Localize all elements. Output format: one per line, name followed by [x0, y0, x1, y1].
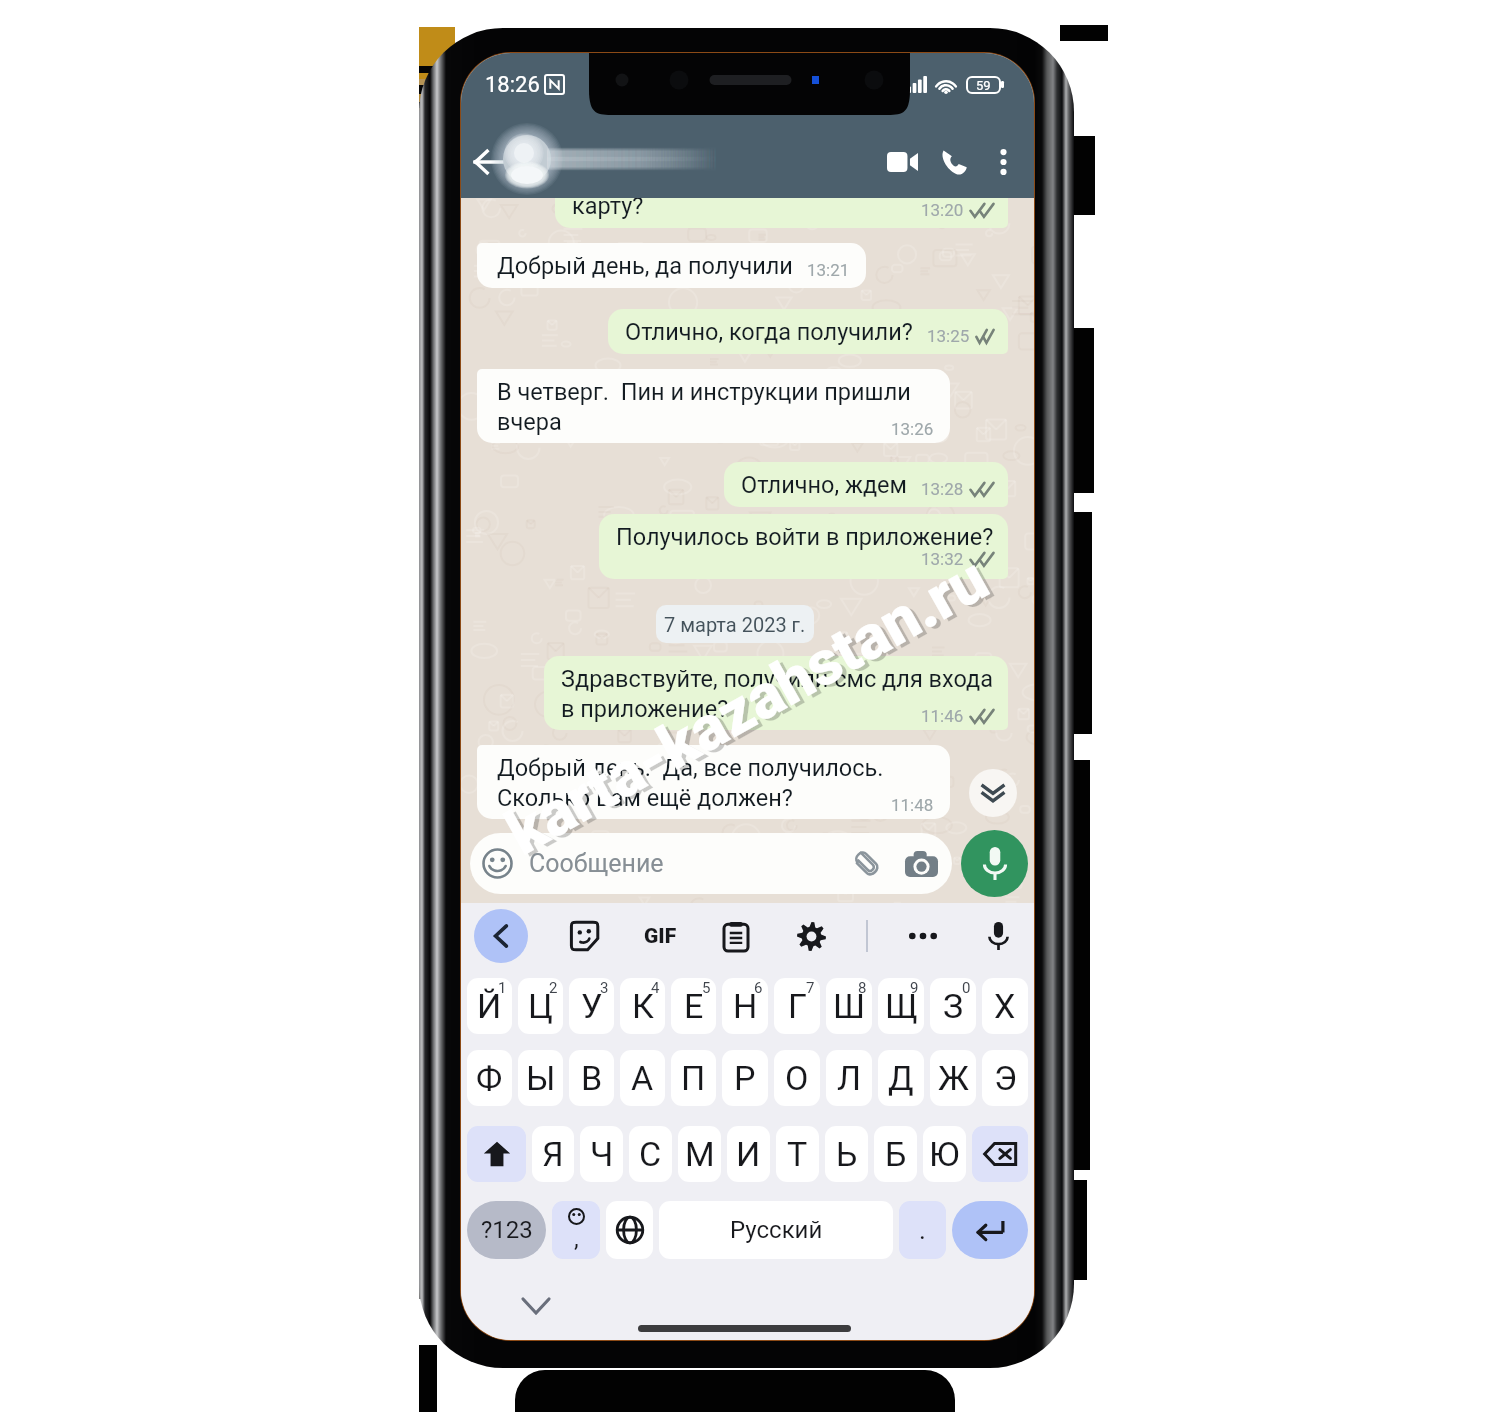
staticText: Д	[888, 1058, 914, 1098]
staticText: Ю	[929, 1134, 960, 1174]
button[interactable]: У	[569, 978, 614, 1034]
staticText: 4	[651, 979, 660, 997]
button[interactable]: П	[671, 1050, 716, 1106]
button[interactable]: Voice input	[978, 916, 1018, 956]
staticText: В четверг. Пин и инструкции пришли вчера	[497, 378, 911, 435]
button[interactable]: И	[727, 1126, 770, 1182]
button[interactable]: О	[774, 1050, 820, 1106]
button[interactable]: Contact profile	[491, 128, 751, 196]
staticText: Ц	[528, 986, 553, 1026]
staticText: 13:28	[921, 479, 964, 499]
button[interactable]: Backspace	[972, 1126, 1028, 1182]
staticText: karta-kazahstan.ru	[499, 544, 1004, 871]
staticText: Э	[994, 1058, 1017, 1098]
button[interactable]: Ы	[518, 1050, 563, 1106]
button[interactable]: Settings	[791, 916, 831, 956]
staticText: Ж	[938, 1058, 969, 1098]
button[interactable]: Отлично, ждем	[724, 462, 1008, 507]
button[interactable]: Record voice message	[961, 830, 1028, 897]
button[interactable]: .	[899, 1201, 946, 1259]
button[interactable]: ?123	[467, 1201, 546, 1259]
staticText: В	[581, 1058, 603, 1098]
staticText: Отлично, когда получили?	[625, 318, 913, 346]
button[interactable]: Э	[982, 1050, 1028, 1106]
button[interactable]: Ч	[580, 1126, 623, 1182]
button[interactable]: Х	[982, 978, 1028, 1034]
staticText: 1	[498, 979, 507, 997]
button[interactable]: Hide keyboard	[521, 1291, 551, 1321]
button[interactable]: Emoji and comma	[552, 1201, 600, 1259]
button[interactable]: Я	[532, 1126, 574, 1182]
button[interactable]: 7 марта 2023 г.	[656, 605, 814, 643]
button[interactable]: Ф	[467, 1050, 512, 1106]
staticText: 5	[702, 979, 711, 997]
button[interactable]: Добрый день, да получили	[477, 243, 866, 288]
button[interactable]: Ю	[923, 1126, 966, 1182]
button[interactable]: Scroll to bottom	[969, 769, 1017, 817]
staticText: GIF	[644, 924, 677, 949]
staticText: 7 марта 2023 г.	[664, 613, 806, 636]
staticText: Добрый день, да получили	[497, 252, 793, 280]
button[interactable]: Г	[774, 978, 820, 1034]
button[interactable]: Enter	[952, 1201, 1028, 1259]
button[interactable]: Clipboard	[716, 916, 756, 956]
button[interactable]: Русский	[659, 1201, 893, 1259]
button[interactable]: Shift	[467, 1126, 526, 1182]
staticText: 8	[858, 979, 867, 997]
staticText: 2	[549, 979, 558, 997]
button[interactable]: Video call	[876, 136, 928, 188]
button[interactable]: З	[930, 978, 976, 1034]
button[interactable]: В четверг. Пин и инструкции пришли вчера	[477, 369, 950, 443]
button[interactable]: Previous	[474, 909, 528, 963]
staticText: Т	[787, 1134, 808, 1174]
button[interactable]: More	[903, 916, 943, 956]
staticText: С	[639, 1134, 662, 1174]
staticText: П	[681, 1058, 706, 1098]
button[interactable]: Back	[463, 136, 515, 188]
staticText: karta-kazahstan.ru	[494, 542, 1000, 869]
button[interactable]: А	[620, 1050, 665, 1106]
button[interactable]: Л	[826, 1050, 872, 1106]
button[interactable]: Ш	[826, 978, 872, 1034]
button[interactable]: Сообщение	[470, 833, 952, 894]
button[interactable]: В	[569, 1050, 614, 1106]
button[interactable]: Д	[878, 1050, 924, 1106]
staticText: Ы	[526, 1058, 556, 1098]
button[interactable]: Н	[722, 978, 768, 1034]
button[interactable]: С	[629, 1126, 672, 1182]
button[interactable]: М	[678, 1126, 721, 1182]
button[interactable]: Т	[776, 1126, 819, 1182]
staticText: 13:20	[921, 200, 964, 220]
button[interactable]: More options	[980, 139, 1026, 185]
staticText: Сообщение	[529, 849, 664, 878]
button[interactable]: Stickers	[564, 916, 604, 956]
button[interactable]: Ь	[825, 1126, 868, 1182]
staticText: 11:46	[921, 706, 964, 726]
button[interactable]: Здравствуйте, получили смс для входа в п…	[544, 656, 1008, 730]
button[interactable]: Р	[722, 1050, 768, 1106]
button[interactable]: Й	[467, 978, 512, 1034]
staticText: Й	[477, 986, 502, 1026]
button[interactable]: Щ	[878, 978, 924, 1034]
button[interactable]: Ж	[930, 1050, 976, 1106]
staticText: 3	[600, 979, 609, 997]
button[interactable]: GIF	[640, 920, 681, 953]
staticText: Р	[734, 1058, 756, 1098]
button[interactable]: Получилось войти в приложение?	[599, 514, 1008, 579]
button[interactable]: К	[620, 978, 665, 1034]
button[interactable]: Отлично, когда получили?	[608, 309, 1008, 354]
staticText: .	[919, 1215, 926, 1245]
staticText: Щ	[885, 986, 918, 1026]
button[interactable]: Е	[671, 978, 716, 1034]
button[interactable]: Ц	[518, 978, 563, 1034]
button[interactable]: Добрый день. Да, все получилось. Сколько…	[477, 745, 950, 819]
staticText: З	[943, 986, 964, 1026]
staticText: 18:26	[485, 72, 540, 98]
staticText: 13:32	[921, 549, 964, 569]
button[interactable]: Change language	[606, 1201, 653, 1259]
button[interactable]: карту?	[555, 198, 1008, 228]
button[interactable]: Voice call	[928, 136, 980, 188]
staticText: 59	[976, 78, 991, 93]
button[interactable]: Б	[874, 1126, 917, 1182]
staticText: Получилось войти в приложение?	[616, 523, 994, 551]
